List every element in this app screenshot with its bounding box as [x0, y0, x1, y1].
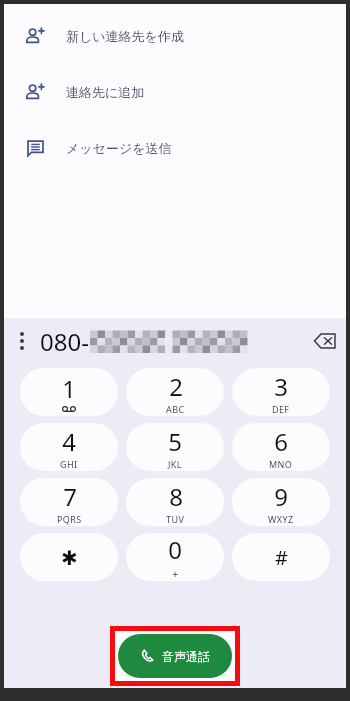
- staticText: MNO: [269, 458, 293, 470]
- button[interactable]: 新しい連絡先を作成: [4, 19, 346, 53]
- staticText: 9: [274, 480, 288, 513]
- staticText: 0: [168, 533, 182, 566]
- staticText: メッセージを送信: [66, 140, 172, 156]
- staticText: 新しい連絡先を作成: [66, 28, 184, 44]
- staticText: 6: [274, 425, 288, 458]
- staticText: JKL: [168, 458, 182, 470]
- button[interactable]: メッセージを送信: [4, 131, 346, 165]
- button[interactable]: 9: [232, 478, 330, 526]
- staticText: 4: [62, 425, 76, 458]
- staticText: 3: [274, 370, 288, 403]
- button[interactable]: 連絡先に追加: [4, 75, 346, 109]
- staticText: 音声通話: [162, 649, 210, 664]
- staticText: 連絡先に追加: [66, 84, 145, 100]
- button[interactable]: 7: [20, 478, 118, 526]
- staticText: PQRS: [57, 513, 82, 525]
- button[interactable]: 0: [126, 533, 224, 581]
- staticText: ABC: [166, 403, 185, 415]
- staticText: +: [172, 566, 179, 581]
- button[interactable]: Backspace: [304, 318, 346, 364]
- staticText: TUV: [166, 513, 185, 525]
- staticText: 080-: [40, 325, 89, 358]
- button[interactable]: 音声通話: [118, 634, 232, 678]
- staticText: 1: [62, 372, 76, 405]
- staticText: WXYZ: [268, 513, 294, 525]
- button[interactable]: 4: [20, 423, 118, 471]
- staticText: 7: [63, 480, 77, 513]
- button[interactable]: 3: [232, 368, 330, 416]
- button[interactable]: 6: [232, 423, 330, 471]
- button[interactable]: ✱: [20, 533, 118, 581]
- button[interactable]: #: [232, 533, 330, 581]
- button[interactable]: 5: [126, 423, 224, 471]
- staticText: 5: [168, 425, 182, 458]
- staticText: ✱: [61, 546, 78, 569]
- staticText: 2: [169, 370, 183, 403]
- staticText: DEF: [272, 403, 290, 415]
- button[interactable]: 8: [126, 478, 224, 526]
- button[interactable]: More options: [4, 318, 40, 364]
- staticText: #: [275, 544, 288, 571]
- button[interactable]: 1: [20, 368, 118, 416]
- button[interactable]: 2: [126, 368, 224, 416]
- staticText: 8: [169, 480, 183, 513]
- staticText: GHI: [60, 458, 78, 470]
